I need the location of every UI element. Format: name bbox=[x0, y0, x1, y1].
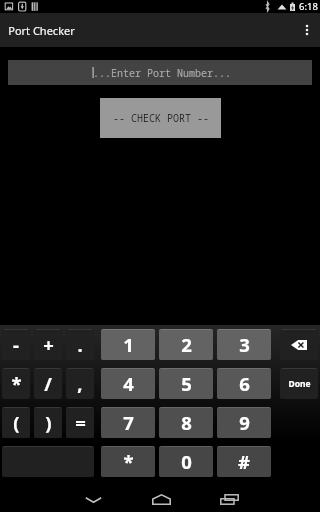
button[interactable]: -- CHECK PORT -- bbox=[100, 98, 221, 138]
staticText: 2 bbox=[181, 332, 192, 357]
button[interactable]: Done bbox=[280, 368, 318, 399]
staticText: 5 bbox=[181, 371, 192, 396]
button[interactable]: * bbox=[101, 446, 155, 477]
staticText: 6 bbox=[239, 371, 250, 396]
staticText: , bbox=[77, 371, 83, 396]
button[interactable]: ) bbox=[34, 407, 62, 438]
button[interactable]: 1 bbox=[101, 329, 155, 360]
staticText: Done bbox=[288, 378, 311, 390]
staticText: 4 bbox=[123, 371, 134, 396]
button[interactable]: ...Enter Port Number... bbox=[8, 60, 312, 85]
staticText: * bbox=[123, 449, 134, 474]
staticText: -- CHECK PORT -- bbox=[113, 111, 209, 125]
staticText: 0 bbox=[181, 449, 192, 474]
button[interactable]: ( bbox=[2, 407, 30, 438]
button[interactable]: 9 bbox=[217, 407, 271, 438]
button[interactable]: = bbox=[66, 407, 94, 438]
staticText: 6:18 bbox=[299, 0, 318, 13]
staticText: . bbox=[77, 332, 83, 357]
staticText: - bbox=[13, 332, 19, 357]
staticText: 7 bbox=[123, 410, 134, 435]
staticText: 9 bbox=[239, 410, 250, 435]
button[interactable]: 3 bbox=[217, 329, 271, 360]
button[interactable]: . bbox=[66, 329, 94, 360]
button[interactable] bbox=[2, 446, 94, 477]
button[interactable]: - bbox=[2, 329, 30, 360]
button[interactable]: More options bbox=[294, 13, 320, 47]
button[interactable]: 6 bbox=[217, 368, 271, 399]
staticText: + bbox=[43, 332, 54, 357]
staticText: * bbox=[11, 371, 22, 396]
button[interactable]: 2 bbox=[159, 329, 213, 360]
button[interactable]: / bbox=[34, 368, 62, 399]
staticText: 1 bbox=[123, 332, 134, 357]
staticText: / bbox=[44, 371, 52, 396]
button[interactable]: Hide keyboard bbox=[59, 487, 127, 512]
button[interactable]: * bbox=[2, 368, 30, 399]
button[interactable]: + bbox=[34, 329, 62, 360]
staticText: Port Checker bbox=[8, 23, 75, 38]
staticText: ) bbox=[45, 410, 52, 435]
button[interactable]: , bbox=[66, 368, 94, 399]
staticText: 8 bbox=[181, 410, 192, 435]
button[interactable]: Home bbox=[127, 487, 195, 512]
button[interactable]: 4 bbox=[101, 368, 155, 399]
staticText: 3 bbox=[239, 332, 250, 357]
button[interactable]: Backspace bbox=[280, 329, 318, 360]
staticText: = bbox=[75, 410, 86, 435]
staticText: ...Enter Port Number... bbox=[93, 66, 231, 80]
staticText: # bbox=[238, 449, 250, 474]
button[interactable]: 7 bbox=[101, 407, 155, 438]
button[interactable]: 8 bbox=[159, 407, 213, 438]
button[interactable]: 0 bbox=[159, 446, 213, 477]
button[interactable]: 5 bbox=[159, 368, 213, 399]
staticText: ( bbox=[13, 410, 20, 435]
button[interactable]: Recent apps bbox=[195, 487, 263, 512]
button[interactable]: # bbox=[217, 446, 271, 477]
